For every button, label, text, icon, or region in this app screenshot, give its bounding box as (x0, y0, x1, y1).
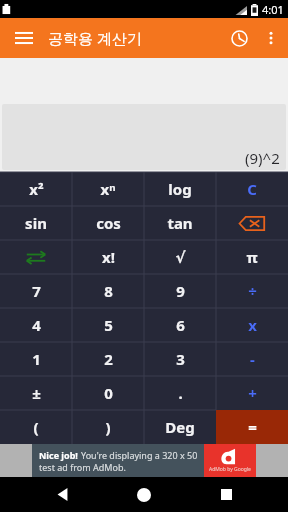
button[interactable]: 5 (72, 308, 144, 342)
staticText: Nice job! (39, 449, 81, 461)
staticText: 0 (104, 383, 113, 403)
staticText: 6 (176, 315, 185, 335)
button[interactable]: ÷ (216, 274, 288, 308)
staticText: x (248, 315, 257, 335)
staticText: Deg (165, 417, 195, 437)
button[interactable]: Menu (8, 22, 40, 54)
staticText: 9 (176, 281, 185, 301)
staticText: √ (175, 249, 186, 266)
button[interactable]: 1 (0, 342, 72, 376)
staticText: 5 (104, 315, 113, 335)
button[interactable]: More options (256, 23, 286, 53)
staticText: cos (96, 213, 121, 233)
button[interactable]: History (222, 21, 256, 55)
staticText: tan (167, 213, 193, 233)
staticText: ) (105, 417, 111, 437)
button[interactable]: - (216, 342, 288, 376)
button[interactable]: C (216, 172, 288, 206)
button[interactable]: 8 (72, 274, 144, 308)
button[interactable]: 9 (144, 274, 216, 308)
staticText: 8 (104, 281, 113, 301)
staticText: ÷ (248, 281, 257, 301)
staticText: 4 (32, 315, 41, 335)
staticText: - (250, 349, 255, 369)
button[interactable]: 7 (0, 274, 72, 308)
staticText: 3 (176, 349, 185, 369)
button[interactable]: π (216, 240, 288, 274)
button[interactable]: Back (42, 477, 82, 512)
button[interactable]: Deg (144, 410, 216, 444)
button[interactable]: √ (144, 240, 216, 274)
button[interactable]: x! (72, 240, 144, 274)
button[interactable]: ± (0, 376, 72, 410)
button[interactable]: . (144, 376, 216, 410)
staticText: 공학용 계산기 (48, 28, 142, 48)
button[interactable]: Swap (0, 240, 72, 274)
staticText: 1 (32, 349, 41, 369)
button[interactable]: tan (144, 206, 216, 240)
staticText: xⁿ (100, 179, 116, 199)
staticText: 4:01 (262, 2, 284, 17)
staticText: + (248, 383, 257, 403)
staticText: π (246, 247, 258, 267)
staticText: 2 (104, 349, 113, 369)
staticText: ± (32, 383, 41, 403)
button[interactable]: sin (0, 206, 72, 240)
button[interactable]: log (144, 172, 216, 206)
staticText: = (248, 417, 257, 437)
staticText: sin (25, 213, 47, 233)
button[interactable]: + (216, 376, 288, 410)
staticText: C (247, 179, 257, 199)
button[interactable]: ( (0, 410, 72, 444)
button[interactable]: x² (0, 172, 72, 206)
button[interactable]: xⁿ (72, 172, 144, 206)
staticText: (9)^2 (245, 148, 280, 168)
staticText: x! (102, 247, 115, 267)
staticText: AdMob by Google (209, 466, 251, 473)
staticText: . (178, 383, 183, 403)
button[interactable]: x (216, 308, 288, 342)
button[interactable]: 3 (144, 342, 216, 376)
staticText: test ad from AdMob. (39, 461, 126, 473)
button[interactable]: AdMob by Google (204, 444, 256, 477)
button[interactable]: Nice job! (32, 444, 204, 477)
button[interactable]: (9)^2 (2, 104, 286, 170)
button[interactable]: cos (72, 206, 144, 240)
button[interactable]: Recents (206, 477, 246, 512)
button[interactable]: 0 (72, 376, 144, 410)
button[interactable]: 2 (72, 342, 144, 376)
button[interactable]: Home (124, 477, 164, 512)
staticText: You're displaying a 320 x 50 (81, 449, 198, 461)
staticText: x² (29, 179, 44, 199)
button[interactable]: = (216, 410, 288, 444)
button[interactable]: 4 (0, 308, 72, 342)
staticText: log (168, 179, 192, 199)
staticText: ( (33, 417, 39, 437)
staticText: 7 (32, 281, 41, 301)
button[interactable]: ) (72, 410, 144, 444)
button[interactable]: Backspace (216, 206, 288, 240)
button[interactable]: 6 (144, 308, 216, 342)
